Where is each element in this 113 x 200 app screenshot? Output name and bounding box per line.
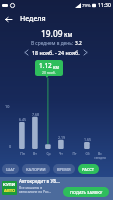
- staticText: 6.45: [19, 117, 26, 122]
- staticText: 0: [9, 144, 12, 149]
- button[interactable]: РАССТ: [78, 164, 99, 174]
- staticText: 1.65: [84, 137, 91, 142]
- staticText: КАЛОРИИ: [26, 167, 46, 172]
- button[interactable]: Previous week: [23, 48, 29, 56]
- button[interactable]: Next week: [82, 48, 88, 56]
- staticText: 7.68: [32, 112, 39, 117]
- staticText: Все машины в: [19, 185, 43, 189]
- staticText: РАССТ: [82, 167, 95, 172]
- staticText: сегодня: [94, 156, 106, 160]
- staticText: ШАГ: [6, 167, 15, 172]
- staticText: АВТО: [4, 188, 16, 194]
- staticText: 19.09: [41, 28, 63, 39]
- staticText: Сб: [85, 151, 90, 156]
- button[interactable]: 1.12: [35, 60, 63, 76]
- staticText: 3.2: [75, 40, 82, 47]
- staticText: Вт: [33, 151, 37, 156]
- staticText: КУПИ: [3, 182, 16, 188]
- staticText: Автокредит в УБ...: [19, 178, 60, 184]
- button[interactable]: ШАГ: [2, 164, 19, 174]
- staticText: 1.12: [39, 61, 52, 70]
- staticText: 2.19: [58, 135, 65, 140]
- staticText: автосалоне по Рос...: [19, 189, 52, 193]
- staticText: Чт: [59, 151, 63, 156]
- staticText: 10: [5, 104, 10, 109]
- staticText: 18 нояб. - 24 нояб.: [32, 49, 80, 56]
- staticText: 79%: [82, 2, 91, 8]
- staticText: 20 нояб.: [42, 70, 56, 75]
- button[interactable]: КАЛОРИИ: [22, 164, 50, 174]
- staticText: 11:30: [98, 2, 111, 9]
- button[interactable]: [0, 177, 113, 200]
- staticText: км: [64, 30, 73, 38]
- staticText: ВРЕМЯ: [57, 167, 71, 172]
- staticText: Пт: [72, 151, 77, 156]
- staticText: ПОДАТЬ ЗАЯВКУ: [70, 190, 103, 195]
- staticText: Вс: [98, 151, 102, 156]
- staticText: Пн: [20, 151, 25, 156]
- staticText: км: [53, 64, 59, 70]
- button[interactable]: Back: [0, 10, 16, 28]
- button[interactable]: ПОДАТЬ ЗАЯВКУ: [63, 187, 109, 197]
- staticText: Ср: [46, 151, 51, 156]
- staticText: Неделя: [20, 14, 46, 24]
- button[interactable]: ВРЕМЯ: [53, 164, 75, 174]
- staticText: В среднем в день:: [31, 40, 73, 47]
